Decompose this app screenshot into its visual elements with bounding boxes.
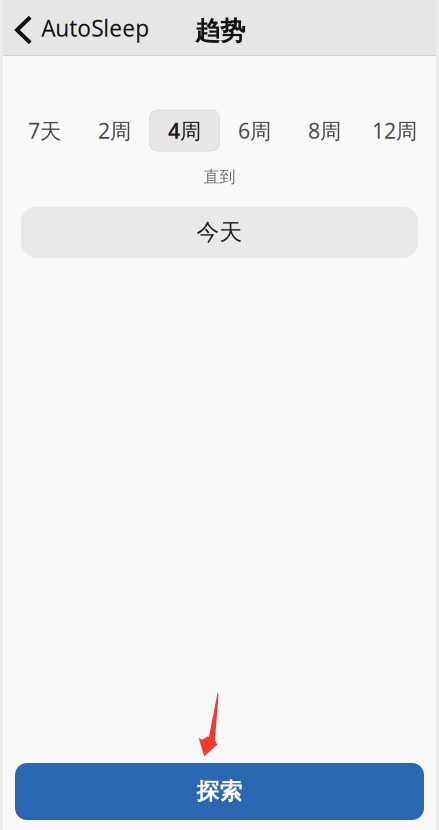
button[interactable]: 4周 — [149, 110, 219, 151]
button[interactable]: 2周 — [79, 110, 149, 151]
button[interactable]: 今天 — [21, 207, 418, 258]
button[interactable]: 探索 — [15, 763, 424, 820]
staticText: 7天 — [28, 116, 61, 145]
staticText: 今天 — [196, 218, 242, 246]
staticText: AutoSleep — [41, 13, 149, 43]
button[interactable]: 12周 — [359, 110, 429, 151]
staticText: 2周 — [98, 116, 131, 145]
staticText: 直到 — [203, 167, 235, 187]
button[interactable]: 6周 — [219, 110, 289, 151]
staticText: 趋势 — [195, 15, 245, 46]
button[interactable]: Back to AutoSleep — [0, 0, 159, 56]
staticText: 4周 — [168, 116, 201, 145]
staticText: 探索 — [196, 778, 242, 805]
staticText: 6周 — [238, 116, 271, 145]
staticText: 8周 — [308, 116, 341, 145]
staticText: 12周 — [372, 116, 417, 145]
button[interactable]: 8周 — [289, 110, 359, 151]
button[interactable]: 7天 — [9, 110, 79, 151]
